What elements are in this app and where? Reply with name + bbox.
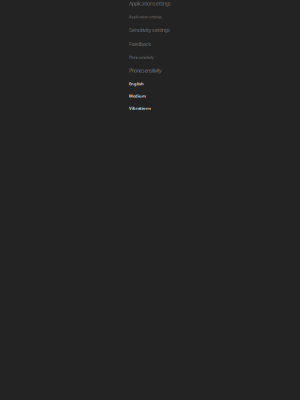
staticText: Phone sensitivity [129, 55, 154, 60]
staticText: Application settings [129, 0, 171, 7]
staticText: Phone sensitivity [129, 67, 162, 74]
staticText: Vibrations [129, 106, 151, 111]
staticText: Application settings [129, 14, 162, 19]
staticText: Sensitivity settings [129, 26, 170, 33]
staticText: Feedback [129, 40, 151, 48]
staticText: English [129, 81, 144, 86]
staticText: Medium [129, 93, 146, 99]
